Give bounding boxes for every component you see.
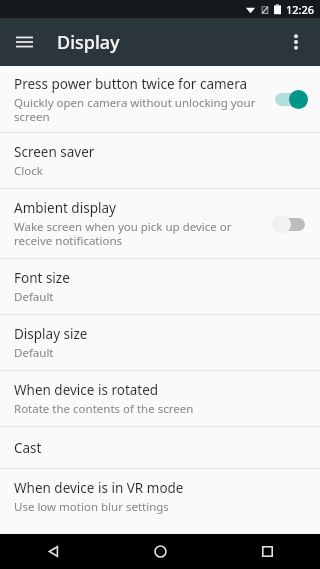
staticText: Ambient display — [14, 199, 116, 217]
button[interactable]: When device is rotated — [0, 371, 320, 426]
staticText: Default — [14, 289, 54, 305]
button[interactable]: Display size — [0, 315, 320, 370]
staticText: When device is in VR mode — [14, 479, 184, 497]
button[interactable]: Font size — [0, 259, 320, 314]
staticText: Rotate the contents of the screen — [14, 401, 194, 417]
button[interactable]: Home — [138, 534, 182, 569]
staticText: Press power button twice for camera — [14, 75, 248, 93]
staticText: Font size — [14, 269, 70, 287]
staticText: Quickly open camera without unlocking yo… — [14, 95, 262, 124]
staticText: Cast — [14, 439, 42, 457]
staticText: Wake screen when you pick up device or r… — [14, 219, 262, 248]
staticText: Display — [57, 30, 120, 55]
staticText: Clock — [14, 163, 43, 179]
button[interactable]: Cast — [0, 427, 320, 468]
button[interactable]: Recent apps — [245, 534, 289, 569]
button[interactable]: When device is in VR mode — [0, 469, 320, 524]
button[interactable]: Back — [31, 534, 75, 569]
staticText: Screen saver — [14, 143, 95, 161]
staticText: Use low motion blur settings — [14, 499, 169, 515]
button[interactable]: More options — [272, 18, 320, 66]
staticText: Default — [14, 345, 54, 361]
button[interactable]: Open navigation drawer — [0, 18, 48, 66]
staticText: Display size — [14, 325, 88, 343]
button[interactable]: Screen saver — [0, 133, 320, 188]
button[interactable]: Ambient display — [0, 189, 320, 258]
staticText: When device is rotated — [14, 381, 159, 399]
staticText: 12:26 — [286, 2, 315, 17]
button[interactable]: Press power button twice for camera — [0, 66, 320, 132]
